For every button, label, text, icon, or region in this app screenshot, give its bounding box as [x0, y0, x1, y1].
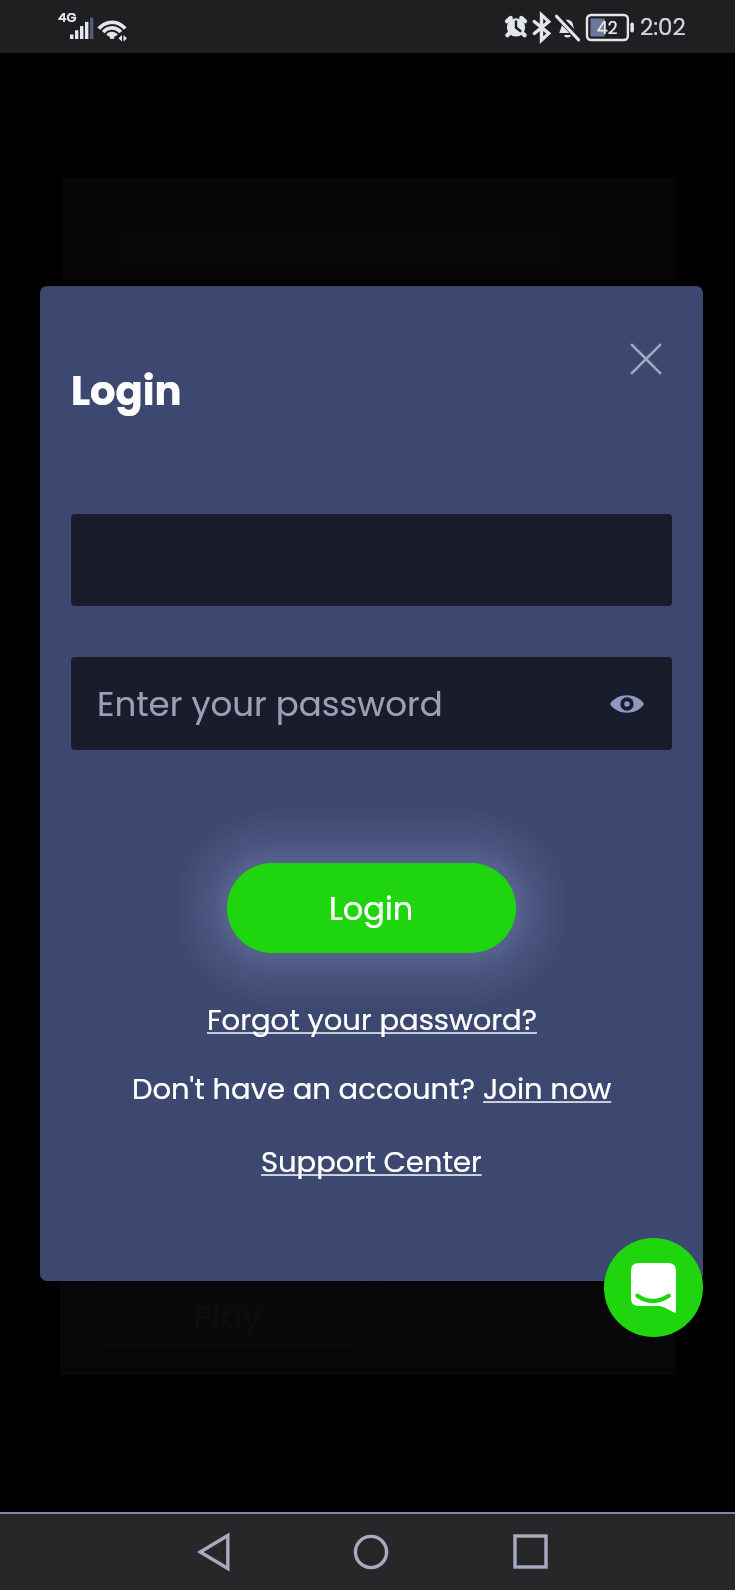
- staticText: Enter your password: [97, 680, 443, 728]
- button[interactable]: Join now: [483, 1069, 612, 1110]
- button[interactable]: Support Center: [257, 1140, 486, 1185]
- staticText: Don't have an account?: [132, 1069, 483, 1110]
- staticText: Forgot your password?: [207, 1000, 537, 1041]
- button[interactable]: Recents: [490, 1514, 570, 1589]
- button[interactable]: Show password: [600, 677, 654, 731]
- button[interactable]: Close: [610, 323, 682, 395]
- staticText: 2:02: [640, 11, 686, 43]
- staticText: Support Center: [261, 1142, 482, 1183]
- button[interactable]: Home: [331, 1514, 411, 1589]
- staticText: 4G: [58, 8, 77, 26]
- button[interactable]: Login: [227, 863, 516, 953]
- button[interactable]: Enter your password: [71, 657, 672, 750]
- button[interactable]: Back: [174, 1514, 254, 1589]
- button[interactable]: Open support chat: [604, 1238, 703, 1337]
- staticText: 42: [597, 16, 618, 40]
- button[interactable]: Forgot your password?: [203, 998, 541, 1043]
- staticText: Login: [71, 363, 182, 419]
- staticText: Login: [329, 886, 414, 931]
- staticText: Join now: [483, 1069, 612, 1110]
